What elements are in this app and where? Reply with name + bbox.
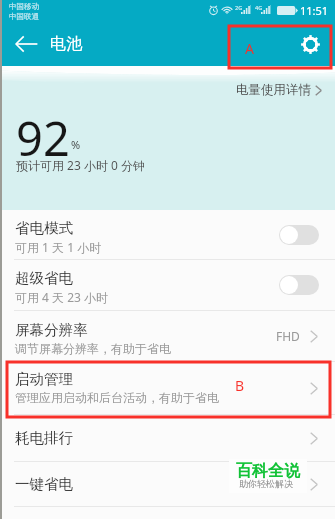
staticText: 11:51 [300,3,329,18]
staticText: 2G [235,4,243,11]
button[interactable]: Toggle [279,225,319,245]
staticText: 预计可用 23 小时 0 分钟 [16,157,146,173]
staticText: FHD [276,328,300,344]
staticText: 4G [255,4,263,11]
button[interactable]: 屏幕分辨率 [0,311,335,361]
staticText: 中国移动 [9,2,39,11]
staticText: 耗电排行 [15,429,73,447]
staticText: 中国联通 [9,12,39,21]
staticText: 电量使用详情 [236,82,311,98]
button[interactable]: 超级省电 [0,260,335,310]
staticText: 一键省电 [15,475,73,493]
staticText: 省电模式 [15,219,73,237]
staticText: 屏幕分辨率 [15,321,88,339]
staticText: 可用 4 天 23 小时 [15,289,109,305]
staticText: 超级省电 [15,269,73,287]
staticText: 百科全说 [236,461,300,481]
staticText: 管理应用启动和后台活动，有助于省电 [15,390,219,405]
staticText: 92 [16,106,70,170]
staticText: 助你轻松解决 [239,478,293,489]
staticText: 可用 1 天 1 小时 [15,239,102,255]
staticText: % [71,137,81,152]
button[interactable]: 电量使用详情 [236,82,322,98]
staticText: A [245,39,254,58]
button[interactable]: Back [11,28,41,60]
button[interactable]: 省电模式 [0,210,335,259]
staticText: 调节屏幕分辨率，有助于省电 [15,341,171,356]
button[interactable]: 耗电排行 [0,415,335,461]
button[interactable]: Toggle [279,275,319,295]
button[interactable]: Settings [294,28,326,60]
staticText: 启动管理 [15,370,73,388]
staticText: B [235,376,245,395]
staticText: 电池 [50,34,82,54]
button[interactable]: 一键省电 [0,462,335,506]
button[interactable]: 启动管理 [0,362,335,414]
